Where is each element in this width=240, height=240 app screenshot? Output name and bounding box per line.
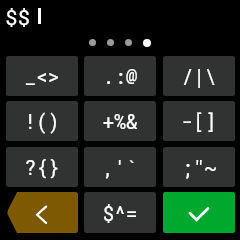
button[interactable]: ,'` — [84, 147, 156, 187]
button[interactable]: .:@ — [84, 56, 156, 96]
button[interactable]: -[] — [163, 101, 235, 141]
staticText: $$ — [5, 3, 31, 31]
staticText: ,'` — [102, 155, 138, 181]
button[interactable]: Backspace — [6, 192, 78, 233]
staticText: _<> — [24, 64, 60, 90]
staticText: /|\ — [181, 64, 217, 90]
staticText: .:@ — [102, 64, 138, 90]
staticText: !() — [24, 109, 60, 135]
button[interactable]: !() — [6, 101, 78, 141]
staticText: ;"~ — [181, 155, 217, 181]
staticText: ?{} — [24, 155, 60, 181]
button[interactable]: Enter — [163, 192, 235, 233]
button[interactable]: _<> — [6, 56, 78, 96]
staticText: $^= — [102, 201, 138, 227]
staticText: -[] — [181, 109, 217, 135]
staticText: +%& — [102, 109, 138, 135]
button[interactable]: +%& — [84, 101, 156, 141]
button[interactable]: $^= — [84, 192, 156, 233]
button[interactable]: /|\ — [163, 56, 235, 96]
button[interactable]: ;"~ — [163, 147, 235, 187]
button[interactable]: ?{} — [6, 147, 78, 187]
